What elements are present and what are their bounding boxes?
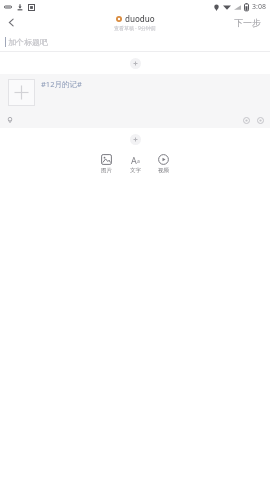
staticText: 查看草稿 · 9分钟前 <box>114 25 156 32</box>
button[interactable]: 下一步 <box>231 15 264 30</box>
button[interactable]: Back <box>0 13 22 32</box>
button[interactable]: A <box>126 154 145 174</box>
staticText: 加个标题吧 <box>8 37 48 47</box>
button[interactable]: duoduo <box>114 13 156 32</box>
staticText: 3:08 <box>252 2 266 12</box>
staticText: A <box>131 154 137 165</box>
staticText: 图片 <box>101 167 112 174</box>
staticText: #12月的记# <box>41 79 82 89</box>
staticText: a <box>137 158 140 165</box>
button[interactable]: Add block <box>130 58 141 69</box>
button[interactable]: More <box>255 115 265 125</box>
button[interactable]: Settings <box>241 115 251 125</box>
button[interactable]: Add image <box>0 74 270 128</box>
staticText: 视频 <box>158 167 169 174</box>
button[interactable]: Add block <box>130 134 141 145</box>
button[interactable]: 图片 <box>97 154 116 174</box>
staticText: 文字 <box>130 167 141 174</box>
staticText: 下一步 <box>234 17 261 28</box>
button[interactable]: Add image <box>8 79 35 106</box>
button[interactable]: 视频 <box>154 154 173 174</box>
button[interactable]: 加个标题吧 <box>0 32 270 51</box>
staticText: duoduo <box>125 13 155 24</box>
button[interactable]: Location <box>5 115 15 125</box>
